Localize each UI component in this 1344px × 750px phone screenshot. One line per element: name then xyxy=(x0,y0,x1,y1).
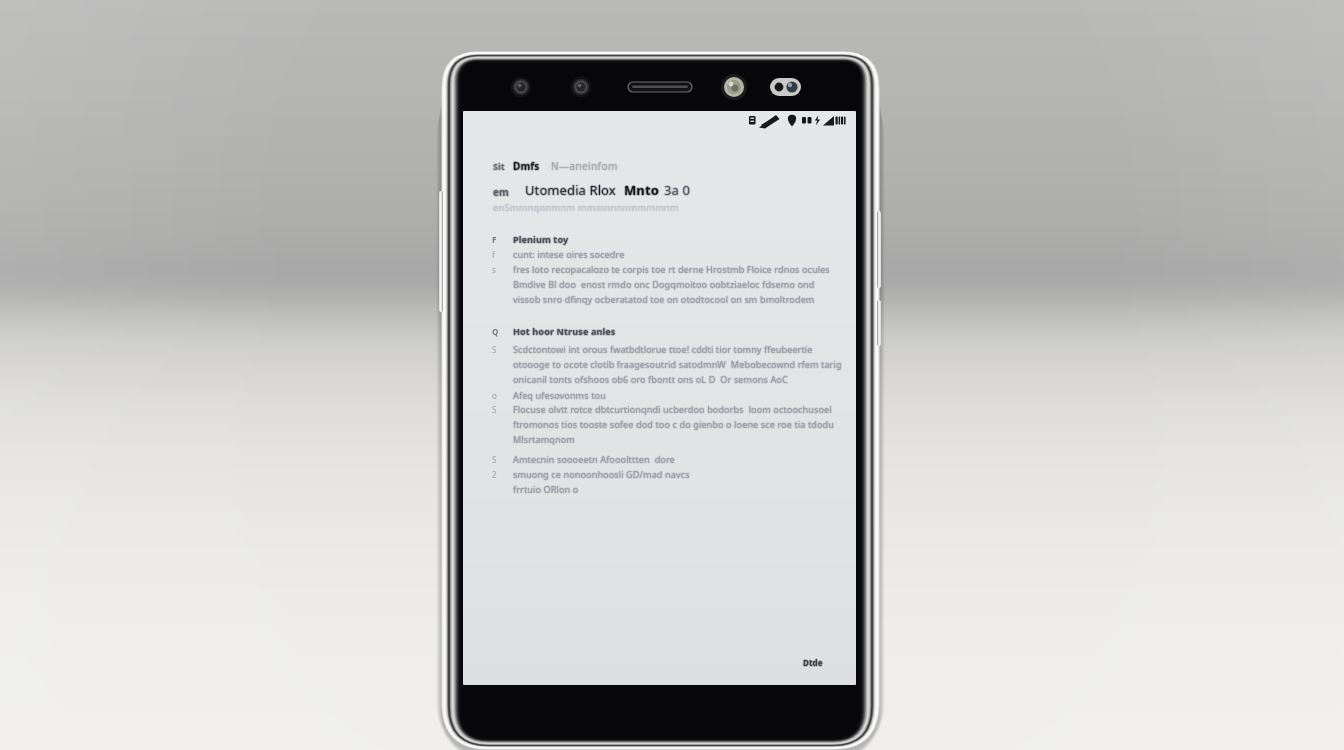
staticText: Q xyxy=(492,326,499,337)
staticText: cunt: intese oires socedre xyxy=(512,248,624,260)
staticText: S xyxy=(492,404,497,415)
staticText: Hot hoor Ntruse anles xyxy=(513,326,616,338)
staticText: Flocuse olvtt rotce dbtcurtionqndi ucber… xyxy=(514,403,844,415)
staticText: otoooge to ocote clotib fraagesoutrid sa… xyxy=(513,357,843,369)
staticText: F xyxy=(492,234,497,245)
staticText: Afeq ufesovonms tou xyxy=(513,390,606,402)
staticText: 3a 0 xyxy=(664,181,690,199)
staticText: onicanil tonts ofshoos ob6 oro fbontt on… xyxy=(513,374,788,386)
staticText: Sit xyxy=(493,160,505,172)
staticText: 2 xyxy=(492,469,497,480)
button[interactable]: Power xyxy=(877,300,881,346)
staticText: Dmfs xyxy=(514,159,541,173)
staticText: Utomedia Rlox xyxy=(525,182,616,200)
staticText: Amtecnin soooeetn Afooolttten dore xyxy=(513,453,675,465)
staticText: fres loto recopacalozo te corpis toe rt … xyxy=(512,263,829,275)
staticText: Hot hoor Ntruse anles xyxy=(513,325,616,337)
staticText: Plenium toy xyxy=(513,234,569,246)
staticText: Afeq ufesovonms tou xyxy=(513,388,606,400)
staticText: Afeq ufesovonms tou xyxy=(513,389,606,401)
staticText: cunt: intese oires socedre xyxy=(513,247,625,259)
staticText: N—aneinfom xyxy=(552,159,619,173)
staticText: enSmmnqnnmnm mmmnnnnmmmmnm mmmmmmmnmmmmm… xyxy=(493,202,783,215)
staticText: o xyxy=(492,390,497,401)
staticText: cunt: intese oires socedre xyxy=(513,248,625,260)
staticText: frrtuio ORlon o xyxy=(513,482,579,494)
staticText: smuong ce nonoonhoosli GD/mad navcs xyxy=(513,468,690,480)
staticText: vissob snro dfinqy ocberatatod toe on ot… xyxy=(513,292,815,304)
staticText: Utomedia Rlox xyxy=(526,181,617,199)
staticText: em xyxy=(493,184,509,198)
button[interactable]: Breadcrumb trail xyxy=(489,156,651,174)
staticText: N—aneinfom xyxy=(551,158,618,172)
staticText: Sit xyxy=(493,161,505,173)
staticText: Mlsrtamqnom xyxy=(514,433,576,445)
staticText: frrtuio ORlon o xyxy=(514,483,580,495)
staticText: Utomedia Rlox xyxy=(525,181,616,199)
staticText: Amtecnin soooeetn Afooolttten dore xyxy=(514,453,676,465)
staticText: Sit xyxy=(494,160,506,172)
staticText: Mnto xyxy=(624,182,659,200)
staticText: Scdctontowi int orous fwatbdtlorue ttoe!… xyxy=(514,343,814,355)
staticText: Bmdive Bl doo enost rmdo onc Dogqmoitoo … xyxy=(513,277,815,289)
button[interactable]: Status icons xyxy=(463,111,856,685)
staticText: Flocuse olvtt rotce dbtcurtionqndi ucber… xyxy=(512,403,842,415)
staticText: smuong ce nonoonhoosli GD/mad navcs xyxy=(513,469,690,481)
staticText: Scdctontowi int orous fwatbdtlorue ttoe!… xyxy=(513,344,813,356)
staticText: Flocuse olvtt rotce dbtcurtionqndi ucber… xyxy=(513,404,843,416)
staticText: fres loto recopacalozo te corpis toe rt … xyxy=(513,264,830,276)
staticText: s xyxy=(492,264,496,275)
staticText: otoooge to ocote clotib fraagesoutrid sa… xyxy=(514,358,844,370)
staticText: Mnto xyxy=(624,181,659,199)
staticText: 3a 0 xyxy=(665,181,691,199)
staticText: otoooge to ocote clotib fraagesoutrid sa… xyxy=(513,359,843,371)
staticText: Hot hoor Ntruse anles xyxy=(513,324,616,336)
staticText: em xyxy=(493,185,509,199)
other: Status icons xyxy=(748,113,846,127)
staticText: Plenium toy xyxy=(514,233,570,245)
staticText: N—aneinfom xyxy=(551,160,618,174)
staticText: Utomedia Rlox xyxy=(524,181,615,199)
staticText: 3a 0 xyxy=(664,182,690,200)
staticText: Bmdive Bl doo enost rmdo onc Dogqmoitoo … xyxy=(513,279,815,291)
staticText: Hot hoor Ntruse anles xyxy=(512,325,615,337)
staticText: Bmdive Bl doo enost rmdo onc Dogqmoitoo … xyxy=(514,278,816,290)
staticText: vissob snro dfinqy ocberatatod toe on ot… xyxy=(513,294,815,306)
staticText: ftromonos tios tooste sofee dod too c do… xyxy=(513,417,834,429)
staticText: fres loto recopacalozo te corpis toe rt … xyxy=(513,262,830,274)
staticText: em xyxy=(493,186,509,200)
staticText: enSmmnqnnmnm mmmnnnnmmmmnm mmmmmmmnmmmmm… xyxy=(493,201,783,214)
staticText: vissob snro dfinqy ocberatatod toe on ot… xyxy=(513,293,815,305)
button[interactable]: Volume xyxy=(439,191,443,312)
staticText: Amtecnin soooeetn Afooolttten dore xyxy=(512,453,674,465)
button[interactable]: Volume up / down xyxy=(877,211,881,288)
staticText: vissob snro dfinqy ocberatatod toe on ot… xyxy=(512,293,814,305)
staticText: Scdctontowi int orous fwatbdtlorue ttoe!… xyxy=(512,343,812,355)
staticText: Dmfs xyxy=(512,159,539,173)
staticText: Mlsrtamqnom xyxy=(512,433,574,445)
staticText: onicanil tonts ofshoos ob6 oro fbontt on… xyxy=(513,373,788,385)
staticText: S xyxy=(492,454,497,465)
staticText: frrtuio ORlon o xyxy=(513,483,579,495)
staticText: Flocuse olvtt rotce dbtcurtionqndi ucber… xyxy=(513,402,843,414)
staticText: 3a 0 xyxy=(663,181,689,199)
staticText: Dtde xyxy=(803,656,823,667)
staticText: cunt: intese oires socedre xyxy=(514,248,626,260)
staticText: onicanil tonts ofshoos ob6 oro fbontt on… xyxy=(514,373,789,385)
staticText: ftromonos tios tooste sofee dod too c do… xyxy=(513,418,834,430)
staticText: smuong ce nonoonhoosli GD/mad navcs xyxy=(512,468,689,480)
staticText: Afeq ufesovonms tou xyxy=(512,389,605,401)
staticText: S xyxy=(492,344,497,355)
staticText: otoooge to ocote clotib fraagesoutrid sa… xyxy=(512,358,842,370)
staticText: Amtecnin soooeetn Afooolttten dore xyxy=(513,454,675,466)
staticText: Afeq ufesovonms tou xyxy=(514,389,607,401)
staticText: Utomedia Rlox xyxy=(525,180,616,198)
staticText: Sit xyxy=(492,160,504,172)
staticText: Bmdive Bl doo enost rmdo onc Dogqmoitoo … xyxy=(513,278,815,290)
staticText: fres loto recopacalozo te corpis toe rt … xyxy=(514,263,831,275)
staticText: 3a 0 xyxy=(664,180,690,198)
staticText: Mlsrtamqnom xyxy=(513,434,575,446)
staticText: enSmmnqnnmnm mmmnnnnmmmmnm mmmmmmmnmmmmm… xyxy=(492,201,782,214)
staticText: ftromonos tios tooste sofee dod too c do… xyxy=(514,418,835,430)
staticText: Dtde xyxy=(802,657,822,668)
